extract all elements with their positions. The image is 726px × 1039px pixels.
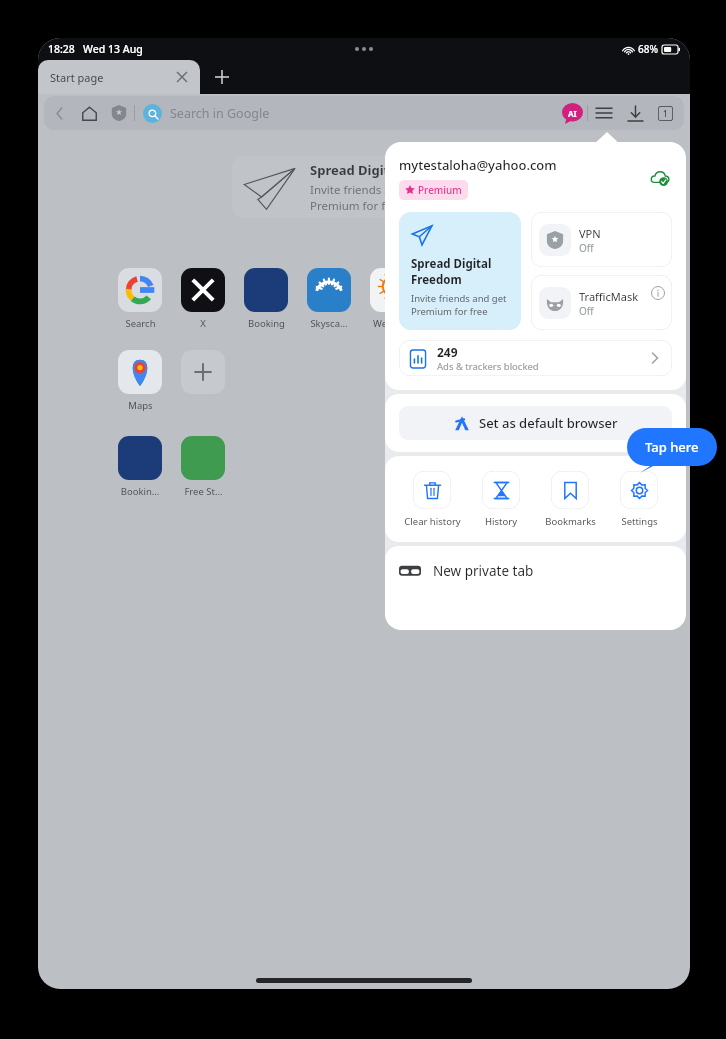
staticText: New private tab: [433, 562, 534, 580]
staticText: Ads & trackers blocked: [437, 360, 539, 373]
staticText: Off: [579, 304, 594, 318]
button[interactable]: Maps: [118, 350, 162, 412]
staticText: Free St...: [184, 485, 223, 498]
button[interactable]: Settings: [607, 471, 671, 528]
staticText: Maps: [128, 399, 153, 412]
button[interactable]: New private tab: [385, 546, 686, 630]
staticText: 18:28 Wed 13 Aug: [48, 42, 143, 56]
button[interactable]: Premium: [405, 183, 462, 197]
staticText: Settings: [621, 515, 658, 528]
staticText: Weather: [373, 317, 411, 330]
button[interactable]: Tabs: [650, 98, 680, 128]
staticText: Booking...: [118, 485, 162, 498]
staticText: Tap here: [645, 438, 699, 456]
staticText: X: [200, 317, 206, 330]
staticText: History: [485, 515, 517, 528]
button[interactable]: Weather: [370, 268, 414, 330]
staticText: Invite friends and get: [310, 182, 426, 198]
staticText: Spread Digital: [411, 256, 492, 272]
staticText: Search in Google: [170, 105, 270, 122]
button[interactable]: TrafficMask: [531, 275, 672, 330]
staticText: Clear history: [404, 515, 461, 528]
button[interactable]: [181, 350, 225, 394]
staticText: Set as default browser: [479, 414, 618, 432]
staticText: Start page: [50, 70, 104, 85]
staticText: Booking: [248, 317, 285, 330]
staticText: 249: [437, 344, 458, 360]
staticText: Premium for free: [411, 305, 488, 318]
button[interactable]: Free St...: [181, 436, 225, 498]
button[interactable]: AI assistant: [557, 98, 587, 128]
button[interactable]: VPN: [531, 212, 672, 267]
button[interactable]: Tap here: [627, 428, 717, 466]
staticText: 68%: [638, 42, 658, 56]
staticText: Premium for free: [310, 198, 403, 214]
button[interactable]: Sync status: [648, 166, 672, 190]
button[interactable]: Clear history: [400, 471, 464, 528]
button[interactable]: Menu: [588, 97, 620, 129]
staticText: Spread Digital: [310, 161, 401, 179]
button[interactable]: Back: [44, 98, 74, 128]
staticText: Bookmarks: [545, 515, 596, 528]
staticText: Off: [579, 241, 594, 255]
button[interactable]: Spread Digital: [399, 212, 521, 330]
staticText: Premium: [418, 183, 462, 197]
button[interactable]: Close tab: [172, 67, 192, 87]
button[interactable]: Downloads: [620, 98, 650, 128]
button[interactable]: Search: [118, 268, 162, 330]
button[interactable]: X: [181, 268, 225, 330]
button[interactable]: 249: [399, 340, 672, 376]
button[interactable]: Skysca...: [307, 268, 351, 330]
staticText: Invite friends and get: [411, 292, 507, 305]
button[interactable]: Booking...: [118, 436, 162, 498]
staticText: VPN: [579, 226, 601, 241]
button[interactable]: Bookmarks: [538, 471, 602, 528]
button[interactable]: Security: [104, 98, 134, 128]
staticText: mytestaloha@yahoo.com: [399, 156, 557, 174]
button[interactable]: Set as default browser: [399, 406, 672, 440]
staticText: Skysca...: [310, 317, 348, 330]
button[interactable]: Info: [651, 286, 665, 300]
button[interactable]: History: [469, 471, 533, 528]
button[interactable]: New tab: [208, 63, 236, 91]
staticText: Search: [125, 317, 156, 330]
staticText: Freedom: [411, 272, 462, 288]
staticText: AI: [568, 108, 577, 119]
staticText: TrafficMask: [579, 289, 639, 304]
button[interactable]: Spread Digital: [232, 156, 542, 218]
button[interactable]: Home: [74, 98, 104, 128]
staticText: 1: [663, 108, 668, 119]
button[interactable]: Booking: [244, 268, 288, 330]
button[interactable]: Start page: [38, 60, 200, 94]
